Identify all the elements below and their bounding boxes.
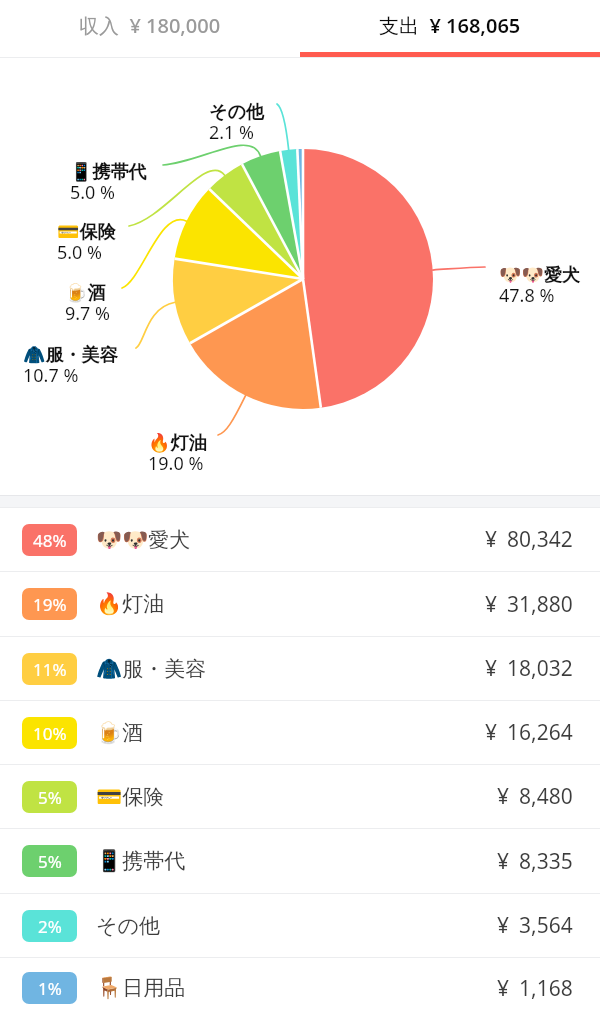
button[interactable]: 2% — [0, 894, 600, 957]
staticText: ¥ — [485, 590, 498, 619]
staticText: 2.1 % — [209, 120, 255, 145]
staticText: 11% — [33, 658, 67, 681]
staticText: その他 — [96, 913, 160, 939]
staticText: 8,335 — [519, 847, 573, 876]
staticText: 1,168 — [519, 974, 573, 1003]
staticText: 5.0 % — [70, 180, 116, 205]
staticText: 🪑日用品 — [96, 975, 186, 1001]
staticText: ¥ — [485, 718, 498, 747]
staticText: 💳保険 — [57, 221, 116, 244]
staticText: 48% — [33, 529, 67, 552]
staticText: 2% — [38, 915, 62, 938]
staticText: 🔥灯油 — [148, 432, 207, 455]
staticText: その他 — [209, 101, 264, 124]
staticText: ¥ — [497, 974, 510, 1003]
staticText: 🧥服・美容 — [96, 656, 207, 682]
staticText: 19.0 % — [148, 451, 204, 476]
staticText: 47.8 % — [499, 283, 555, 308]
staticText: 🧥服・美容 — [23, 344, 118, 367]
staticText: 31,880 — [507, 590, 573, 619]
button[interactable]: 19% — [0, 572, 600, 636]
staticText: 10.7 % — [23, 363, 79, 388]
staticText: 16,264 — [507, 718, 573, 747]
staticText: ¥ — [497, 911, 510, 940]
staticText: 🔥灯油 — [96, 591, 165, 617]
staticText: 1% — [38, 977, 62, 1000]
staticText: ¥ — [485, 654, 498, 683]
staticText: 支出 ¥ 168,065 — [379, 12, 521, 39]
staticText: ¥ — [485, 525, 498, 554]
staticText: 5% — [38, 850, 62, 873]
staticText: 3,564 — [519, 911, 573, 940]
button[interactable]: 1% — [0, 958, 600, 1018]
staticText: 80,342 — [507, 525, 573, 554]
staticText: 🍺酒 — [96, 720, 144, 746]
staticText: 🍺酒 — [65, 282, 106, 305]
button[interactable]: 10% — [0, 701, 600, 764]
button[interactable]: 支出 ¥ 168,065 — [300, 0, 600, 50]
staticText: 9.7 % — [65, 301, 111, 326]
button[interactable]: 収入 ¥ 180,000 — [0, 0, 300, 50]
staticText: 💳保険 — [96, 784, 165, 810]
staticText: 5% — [38, 786, 62, 809]
button[interactable]: 5% — [0, 829, 600, 893]
staticText: 🐶🐶愛犬 — [499, 264, 580, 287]
button[interactable]: 11% — [0, 637, 600, 700]
staticText: ¥ — [497, 782, 510, 811]
staticText: 📱携帯代 — [96, 848, 186, 874]
button[interactable]: 48% — [0, 508, 600, 571]
staticText: 19% — [33, 593, 67, 616]
staticText: 収入 ¥ 180,000 — [79, 12, 221, 39]
staticText: 10% — [33, 722, 67, 745]
button[interactable]: 5% — [0, 765, 600, 828]
staticText: 🐶🐶愛犬 — [96, 527, 191, 553]
staticText: ¥ — [497, 847, 510, 876]
staticText: 8,480 — [519, 782, 573, 811]
staticText: 📱携帯代 — [70, 161, 147, 184]
staticText: 5.0 % — [57, 240, 103, 265]
staticText: 18,032 — [507, 654, 573, 683]
